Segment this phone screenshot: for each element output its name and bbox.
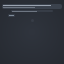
button[interactable]: [2, 4, 62, 9]
button[interactable]: [11, 10, 53, 12]
button[interactable]: Open: [8, 14, 15, 17]
